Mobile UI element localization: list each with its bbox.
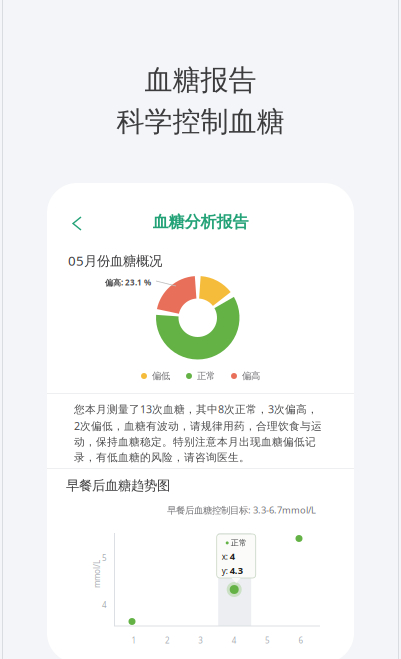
staticText: mmol/L (83, 569, 111, 579)
button[interactable]: 返回 (60, 210, 94, 237)
staticText: 科学控制血糖 (116, 104, 284, 139)
staticText: 早餐后血糖控制目标: 3.3-6.7mmol/L (167, 504, 316, 516)
staticText: 早餐后血糖趋势图 (66, 477, 170, 494)
staticText: 正常 (197, 370, 215, 382)
staticText: 4 (232, 635, 237, 646)
staticText: 偏高: 23.1 % (105, 277, 151, 288)
staticText: 5 (265, 635, 270, 646)
staticText: 血糖分析报告 (152, 212, 248, 232)
staticText: y: 4.3 (222, 564, 243, 577)
staticText: 1 (131, 635, 136, 646)
staticText: 偏低 (152, 370, 170, 382)
staticText: 血糖报告 (144, 63, 256, 97)
staticText: 5 (102, 553, 107, 563)
staticText: 正常 (231, 538, 247, 548)
staticText: x: 4 (222, 550, 235, 562)
staticText: 4 (102, 600, 107, 610)
staticText: 偏高 (242, 370, 260, 382)
staticText: 6 (298, 635, 303, 646)
staticText: 05月份血糖概况 (68, 252, 162, 269)
staticText: 2 (165, 635, 170, 646)
staticText: 您本月测量了13次血糖，其中8次正常，3次偏高，2次偏低，血糖有波动，请规律用药… (74, 402, 322, 464)
staticText: 3 (198, 635, 203, 646)
